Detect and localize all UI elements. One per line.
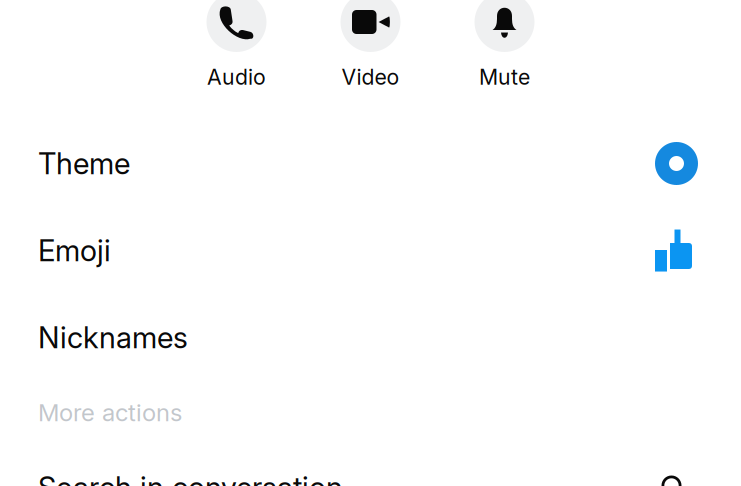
button[interactable]: Nicknames [0, 294, 741, 381]
staticText: More actions [38, 398, 182, 427]
staticText: Audio [207, 64, 266, 90]
button[interactable]: Video [310, 0, 430, 87]
button[interactable]: Emoji [0, 207, 741, 294]
staticText: Nicknames [38, 320, 188, 355]
button[interactable]: Search in conversation [0, 444, 741, 486]
staticText: Theme [38, 146, 130, 181]
staticText: Mute [479, 64, 530, 90]
button[interactable]: Audio [176, 0, 296, 87]
staticText: Video [341, 64, 399, 90]
button[interactable]: Mute [444, 0, 564, 87]
staticText: Search in conversation [38, 470, 343, 486]
staticText: Emoji [38, 233, 111, 268]
button[interactable]: Theme [0, 120, 741, 207]
